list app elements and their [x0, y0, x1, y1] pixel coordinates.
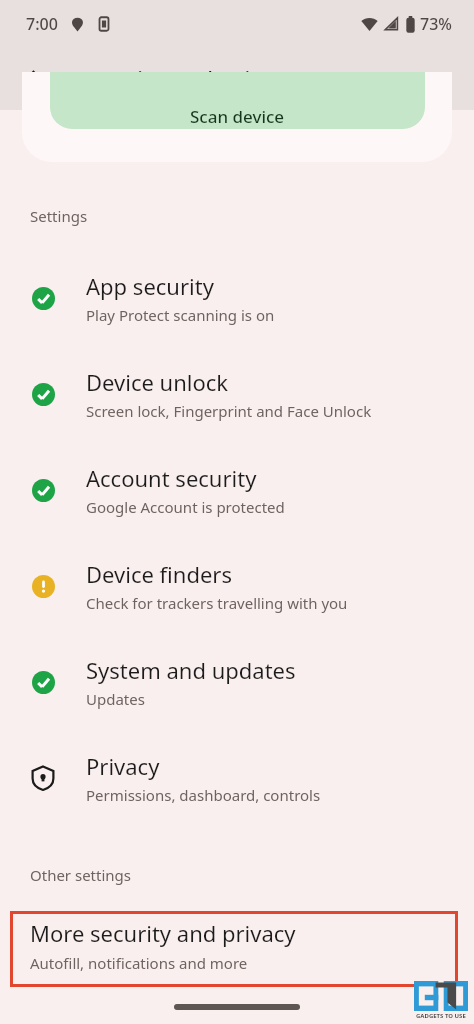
staticText: Permissions, dashboard, controls — [86, 785, 321, 805]
staticText: Security and privacy — [74, 63, 300, 96]
staticText: Screen lock, Fingerprint and Face Unlock — [86, 401, 372, 421]
staticText: System and updates — [86, 655, 296, 685]
staticText: Check for trackers travelling with you — [86, 593, 348, 613]
button[interactable]: Device unlock — [0, 346, 474, 442]
button[interactable]: Privacy — [0, 730, 474, 826]
staticText: Google Account is protected — [86, 497, 285, 517]
button[interactable]: More security and privacy — [30, 918, 430, 973]
button[interactable]: Scan device — [50, 72, 425, 129]
staticText: 73% — [420, 13, 452, 35]
button[interactable]: System and updates — [0, 634, 474, 730]
staticText: More security and privacy — [30, 918, 296, 948]
button[interactable]: Account security — [0, 442, 474, 538]
staticText: Settings — [30, 206, 88, 226]
staticText: Scan device — [190, 105, 285, 128]
staticText: 7:00 — [26, 13, 58, 35]
staticText: Autofill, notifications and more — [30, 953, 248, 973]
staticText: App security — [86, 271, 214, 301]
button[interactable]: Device finders — [0, 538, 474, 634]
staticText: Privacy — [86, 751, 160, 781]
staticText: GADGETS TO USE — [416, 1012, 466, 1020]
staticText: Updates — [86, 689, 145, 709]
staticText: Play Protect scanning is on — [86, 305, 275, 325]
staticText: Device finders — [86, 559, 232, 589]
staticText: Device unlock — [86, 367, 229, 397]
button[interactable]: App security — [0, 250, 474, 346]
staticText: Other settings — [30, 865, 131, 885]
staticText: Account security — [86, 463, 257, 493]
button[interactable]: Back — [14, 57, 58, 101]
